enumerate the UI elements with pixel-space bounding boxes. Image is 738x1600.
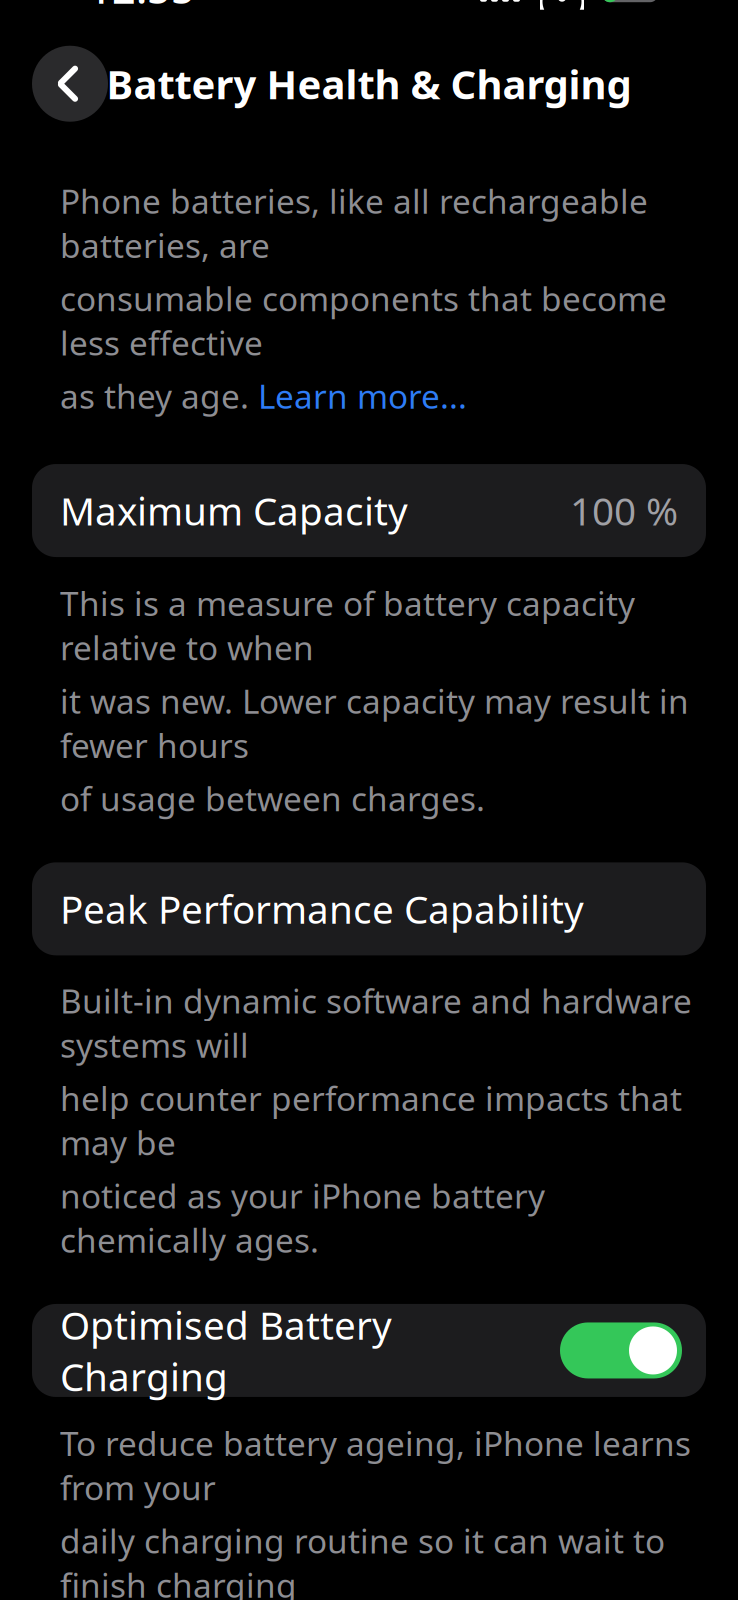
staticText: This is a measure of battery capacity re… — [60, 581, 635, 669]
button[interactable]: Maximum Capacity — [32, 464, 706, 557]
staticText: Built-in dynamic software and hardware s… — [60, 978, 692, 1067]
staticText: 24 — [617, 0, 645, 4]
staticText: Maximum Capacity — [60, 485, 408, 536]
staticText: it was new. Lower capacity may result in… — [60, 679, 689, 767]
staticText: noticed as your iPhone battery chemicall… — [60, 1173, 545, 1262]
button[interactable]: Learn more... — [258, 374, 467, 418]
staticText: help counter performance impacts that ma… — [60, 1076, 682, 1164]
staticText: consumable components that become less e… — [60, 276, 667, 365]
staticText: Battery Health & Charging — [106, 57, 631, 110]
staticText: of usage between charges. — [60, 776, 485, 820]
staticText: daily charging routine so it can wait to… — [60, 1518, 665, 1600]
staticText: as they age. — [60, 374, 258, 418]
staticText: Optimised Battery Charging — [60, 1299, 392, 1402]
button[interactable]: Peak Performance Capability — [32, 862, 706, 955]
staticText: To reduce battery ageing, iPhone learns … — [60, 1421, 691, 1509]
staticText: Learn more... — [258, 374, 467, 418]
staticText: Phone batteries, like all rechargeable b… — [60, 179, 648, 267]
staticText: 12:55 — [88, 0, 195, 15]
staticText: 100 % — [570, 485, 678, 536]
button[interactable]: Back — [32, 46, 108, 122]
staticText: Peak Performance Capability — [60, 883, 584, 934]
button[interactable]: Optimised Battery Charging — [32, 1304, 706, 1397]
